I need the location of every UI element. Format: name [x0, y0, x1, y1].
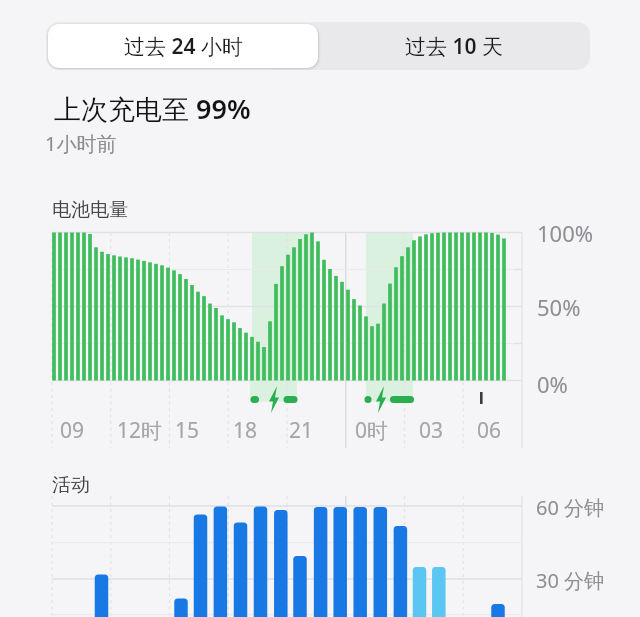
staticText: 过去 10 天 [405, 32, 503, 61]
button[interactable]: 过去 10 天 [318, 22, 590, 70]
staticText: 21 [289, 416, 314, 445]
staticText: 12时 [117, 416, 163, 445]
staticText: 活动 [52, 473, 90, 497]
staticText: 100% [537, 218, 594, 248]
staticText: 06 [477, 416, 502, 445]
staticText: 15 [175, 416, 200, 445]
staticText: 18 [233, 416, 258, 445]
staticText: 上次充电至 99% [54, 90, 251, 127]
staticText: 30 分钟 [536, 567, 605, 594]
staticText: 09 [60, 416, 85, 445]
staticText: 03 [419, 416, 444, 445]
staticText: 0% [537, 369, 568, 399]
staticText: 1小时前 [45, 130, 117, 157]
button[interactable]: 过去 24 小时 [48, 24, 318, 68]
staticText: 过去 24 小时 [124, 32, 243, 61]
staticText: 0时 [355, 416, 389, 445]
staticText: 电池电量 [52, 198, 128, 222]
staticText: 50% [537, 292, 581, 322]
staticText: 60 分钟 [536, 494, 605, 521]
